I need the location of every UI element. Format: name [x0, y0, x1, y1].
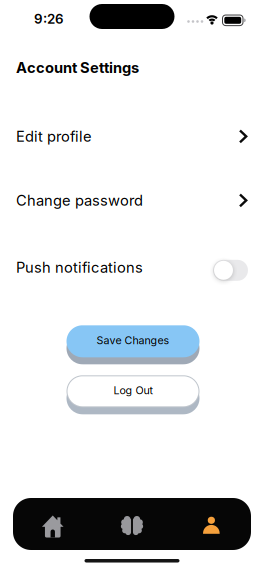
staticText: Log Out [113, 384, 152, 397]
button[interactable]: Home [13, 498, 92, 550]
button[interactable]: Profile [172, 498, 251, 550]
button[interactable]: Change password [0, 190, 264, 210]
button[interactable]: Log Out [65, 375, 198, 407]
button[interactable]: Push notifications [0, 257, 264, 277]
button[interactable]: Edit profile [0, 126, 264, 146]
button[interactable]: Save Changes [65, 325, 198, 357]
staticText: Account Settings [16, 59, 139, 76]
staticText: Save Changes [96, 334, 169, 347]
staticText: Change password [16, 192, 143, 209]
staticText: 9:26 [34, 11, 64, 27]
staticText: Push notifications [16, 259, 143, 276]
staticText: Edit profile [16, 128, 92, 145]
button[interactable]: Insights [92, 498, 172, 550]
